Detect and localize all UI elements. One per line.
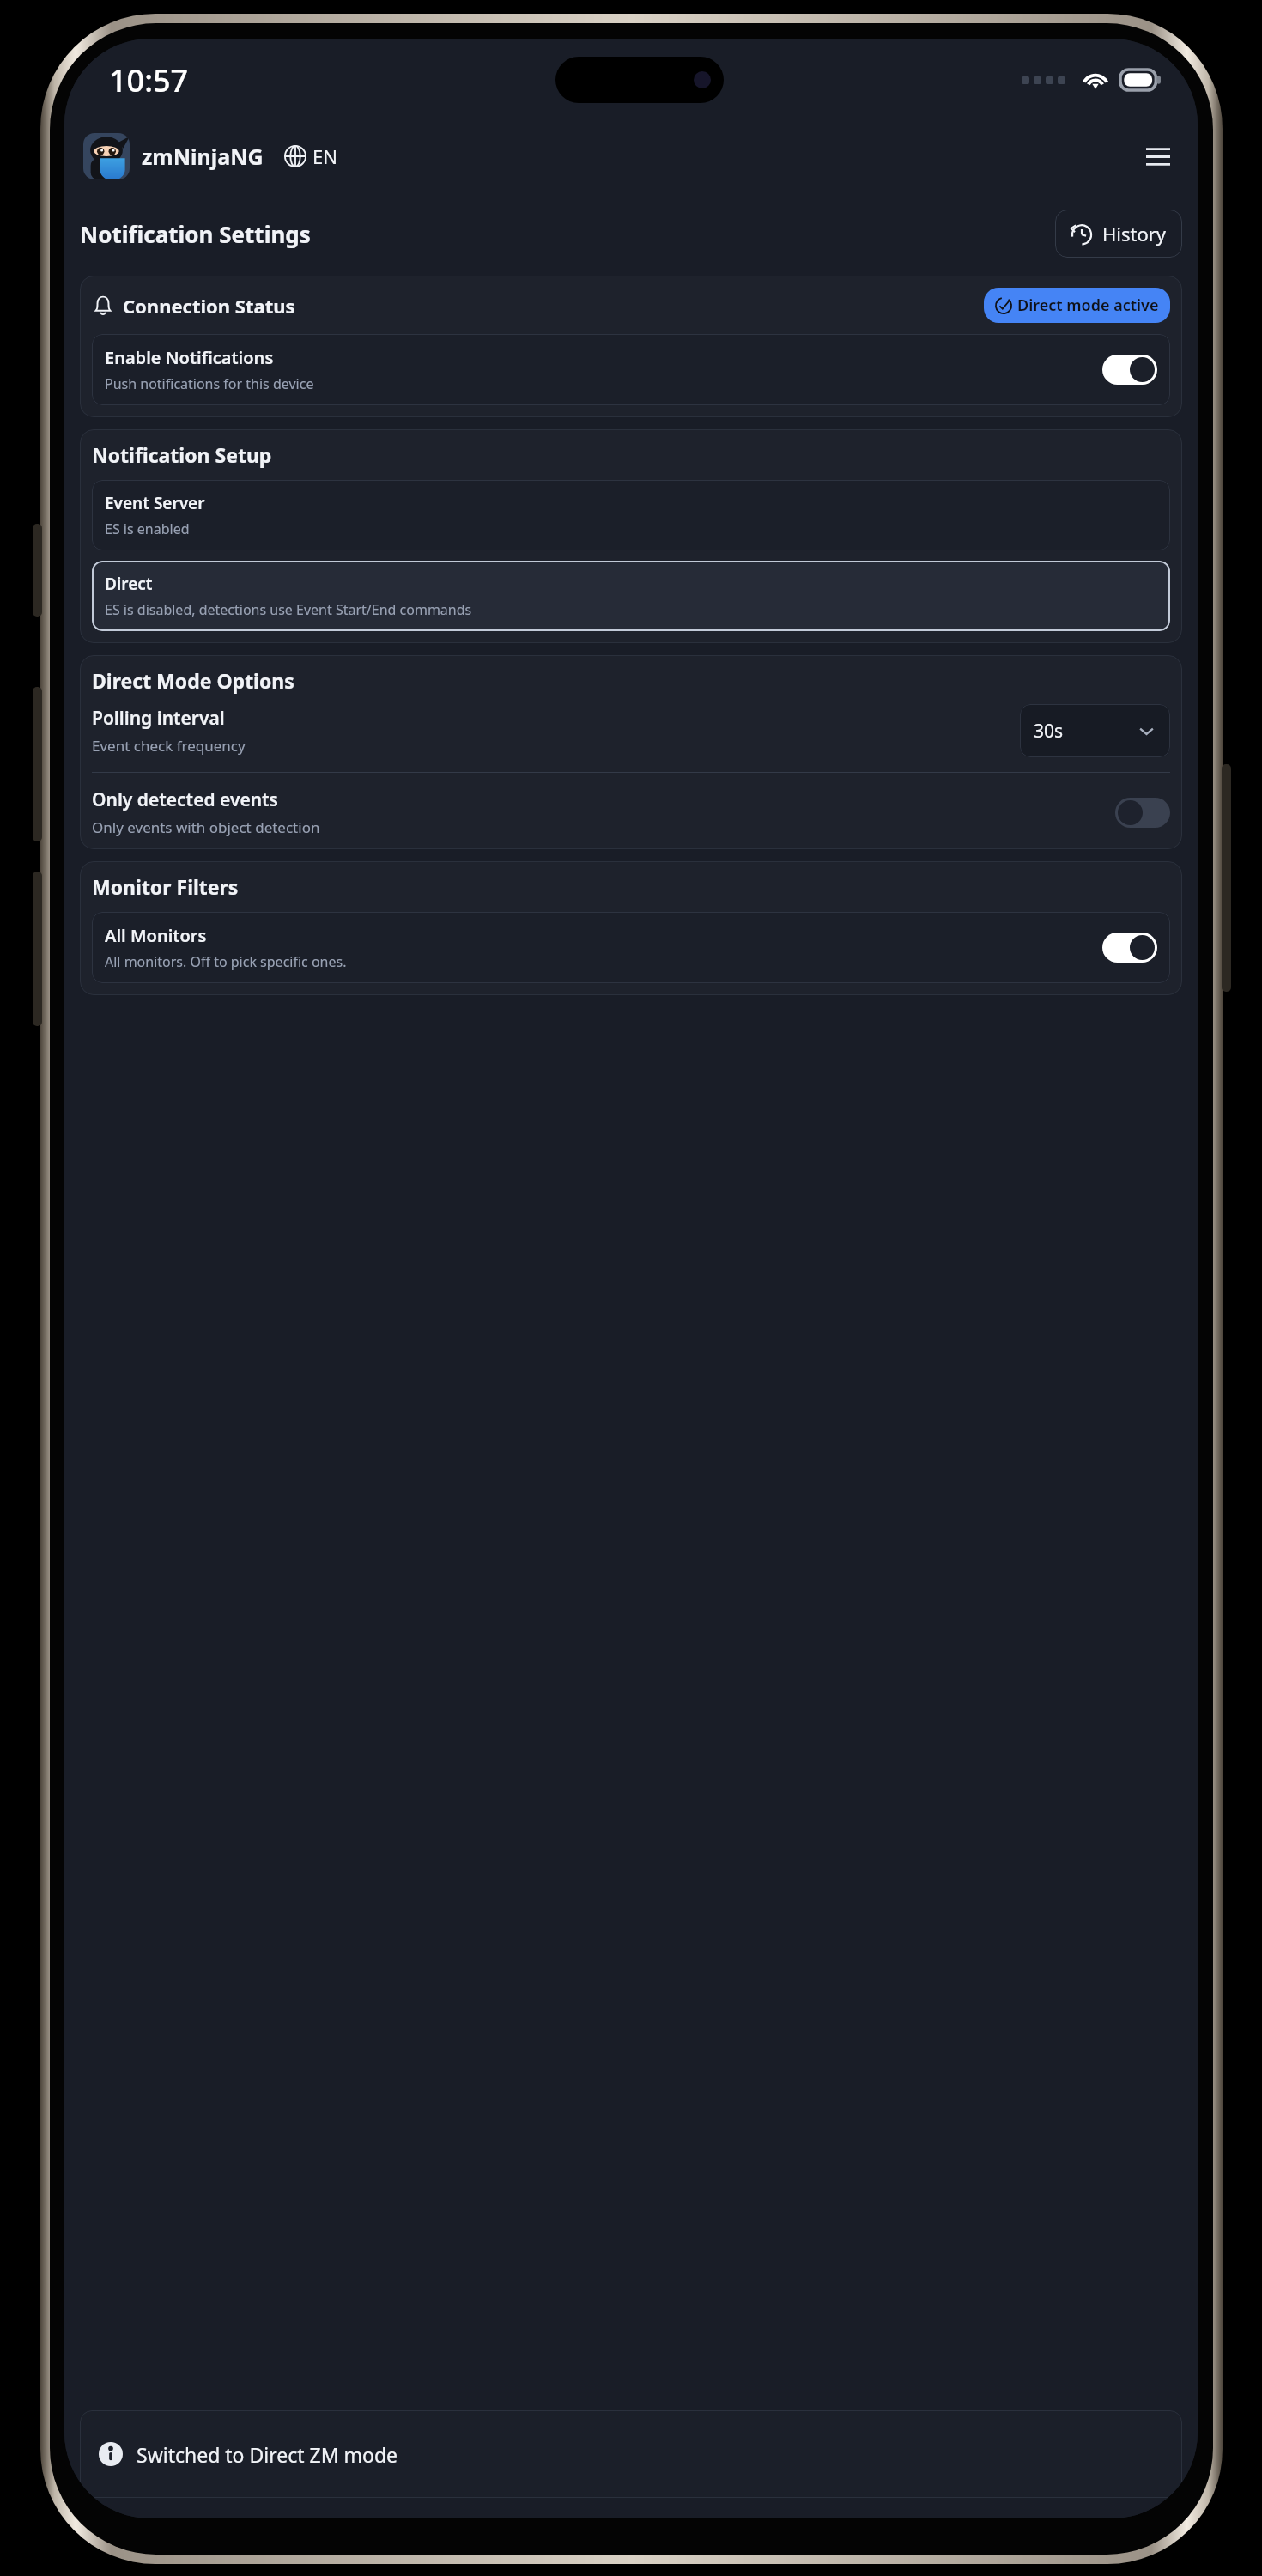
staticText: Switched to Direct ZM mode	[137, 2441, 398, 2468]
staticText: Push notifications for this device	[105, 374, 314, 393]
button[interactable]: 30s	[1020, 704, 1170, 757]
staticText: 30s	[1034, 719, 1064, 744]
button[interactable]: Switched to Direct ZM mode	[80, 2410, 1182, 2498]
staticText: Event Server	[105, 492, 205, 514]
staticText: zmNinjaNG	[142, 142, 264, 171]
staticText: Only events with object detection	[92, 817, 320, 837]
staticText: Enable Notifications	[105, 346, 274, 369]
staticText: Direct	[105, 573, 153, 595]
button[interactable]: History	[1055, 210, 1182, 258]
button[interactable]	[1102, 355, 1157, 385]
button[interactable]: All Monitors	[92, 912, 1170, 983]
button[interactable]: Enable Notifications	[92, 334, 1170, 405]
staticText: Monitor Filters	[92, 873, 239, 900]
staticText: Direct Mode Options	[92, 667, 294, 694]
staticText: Direct mode active	[1017, 295, 1159, 316]
button[interactable]: EN	[281, 140, 341, 173]
staticText: All monitors. Off to pick specific ones.	[105, 952, 347, 971]
staticText: ES is enabled	[105, 519, 190, 538]
staticText: ES is disabled, detections use Event Sta…	[105, 600, 472, 619]
button[interactable]: Menu	[1138, 136, 1179, 177]
button[interactable]: Only detected events	[92, 787, 1170, 837]
staticText: 10:57	[109, 59, 189, 101]
button[interactable]	[1102, 933, 1157, 963]
staticText: Notification Settings	[80, 219, 311, 249]
staticText: Connection Status	[123, 293, 295, 319]
staticText: Event check frequency	[92, 736, 246, 756]
button[interactable]: Event Server	[92, 480, 1170, 550]
button[interactable]	[1115, 798, 1170, 828]
staticText: EN	[312, 143, 337, 169]
staticText: Polling interval	[92, 706, 225, 731]
button[interactable]: Direct mode active	[984, 288, 1170, 323]
staticText: Only detected events	[92, 787, 278, 812]
staticText: All Monitors	[105, 924, 207, 947]
button[interactable]: Direct	[92, 561, 1170, 631]
staticText: History	[1102, 221, 1167, 246]
staticText: Notification Setup	[92, 441, 272, 468]
